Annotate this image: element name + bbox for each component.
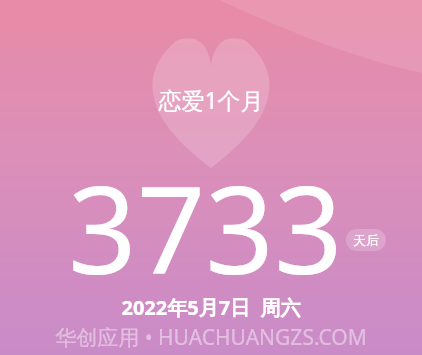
staticText: 3733 (68, 146, 343, 309)
staticText: 天后 (353, 232, 379, 248)
staticText: 2022年5月7日 周六 (121, 294, 301, 321)
button[interactable]: 3733 (68, 146, 343, 309)
staticText: 恋爱1个月 (158, 84, 264, 115)
button[interactable]: 恋爱1个月 (146, 82, 276, 117)
button[interactable]: 2022年5月7日 周六 (111, 293, 311, 322)
button[interactable]: 天后 (346, 229, 386, 251)
staticText: 华创应用 • HUACHUANGZS.COM (55, 323, 367, 352)
